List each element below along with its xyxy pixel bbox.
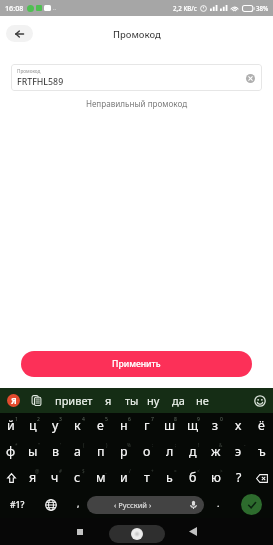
button[interactable]: #1? [3, 493, 31, 517]
staticText: ' [60, 442, 62, 448]
button[interactable]: Промокод [11, 64, 262, 91]
staticText: #1? [10, 499, 25, 511]
button[interactable]: Удалить [250, 465, 273, 491]
staticText: щ [187, 417, 199, 434]
staticText: ! [198, 442, 200, 448]
staticText: ну [147, 393, 160, 408]
button[interactable]: о [135, 439, 158, 465]
button[interactable]: привет [53, 388, 95, 413]
button[interactable]: е [89, 413, 112, 439]
button[interactable]: ф [0, 439, 22, 465]
button[interactable]: ь [158, 465, 181, 491]
staticText: ты [125, 393, 139, 408]
button[interactable]: да [170, 388, 187, 413]
button[interactable]: ё [250, 413, 273, 439]
staticText: & [219, 442, 223, 448]
staticText: н [120, 417, 128, 434]
staticText: 9 [197, 416, 200, 423]
staticText: 16:08 [5, 3, 24, 13]
button[interactable]: й [0, 413, 22, 439]
button[interactable]: и [112, 465, 135, 491]
button[interactable]: Очистить [241, 69, 259, 87]
staticText: в [52, 443, 59, 460]
button[interactable]: ну [145, 388, 162, 413]
button[interactable]: ? [227, 465, 250, 491]
button[interactable]: Готово [241, 494, 262, 515]
button[interactable]: д [181, 439, 204, 465]
staticText: й [7, 417, 15, 434]
button[interactable]: к [66, 413, 89, 439]
staticText: FRTFHL589 [17, 76, 64, 88]
button[interactable]: Недавние [60, 518, 100, 545]
button[interactable]: Shift [0, 465, 22, 491]
button[interactable]: р [112, 439, 135, 465]
button[interactable]: н [112, 413, 135, 439]
staticText: да [172, 393, 185, 408]
staticText: " [38, 442, 40, 448]
button[interactable]: ты [123, 388, 141, 413]
staticText: .. [53, 4, 57, 12]
button[interactable]: в [44, 439, 66, 465]
staticText: п [97, 443, 105, 460]
button[interactable]: х [227, 413, 250, 439]
button[interactable]: з [204, 413, 227, 439]
staticText: < [197, 468, 200, 474]
staticText: е [97, 417, 104, 434]
button[interactable]: Применить [21, 351, 252, 377]
button[interactable]: ‹ Русский › [87, 496, 204, 514]
staticText: Промокод [17, 68, 41, 74]
staticText: м [96, 469, 106, 486]
button[interactable]: ж [204, 439, 227, 465]
staticText: / [129, 468, 131, 474]
button[interactable]: б [181, 465, 204, 491]
button[interactable]: , [70, 493, 86, 517]
staticText: 4 [82, 416, 85, 423]
button[interactable]: с [66, 465, 89, 491]
staticText: привет [55, 393, 93, 408]
button[interactable]: л [158, 439, 181, 465]
button[interactable]: ш [158, 413, 181, 439]
staticText: о [143, 443, 151, 460]
staticText: ё [258, 417, 265, 434]
button[interactable]: я [103, 388, 114, 413]
staticText: л [166, 443, 174, 460]
staticText: Применить [112, 358, 161, 370]
button[interactable]: Назад [6, 25, 33, 42]
staticText: у [52, 417, 59, 434]
button[interactable]: Домой [109, 525, 165, 543]
button[interactable]: т [135, 465, 158, 491]
button[interactable]: Назад [173, 518, 213, 545]
staticText: % [127, 442, 131, 448]
button[interactable]: не [194, 388, 211, 413]
staticText: ; [175, 442, 177, 448]
button[interactable]: а [66, 439, 89, 465]
button[interactable]: п [89, 439, 112, 465]
staticText: ъ [258, 443, 266, 460]
button[interactable]: Сменить язык [39, 493, 62, 517]
button[interactable]: ч [44, 465, 66, 491]
button[interactable]: ю [204, 465, 227, 491]
button[interactable]: ы [22, 439, 44, 465]
button[interactable]: щ [181, 413, 204, 439]
button[interactable]: э [227, 439, 250, 465]
staticText: ц [29, 417, 37, 434]
staticText: @ [35, 468, 40, 474]
button[interactable]: г [135, 413, 158, 439]
button[interactable]: Яндекс [7, 394, 20, 407]
staticText: 7 [151, 416, 154, 423]
button[interactable]: у [44, 413, 66, 439]
button[interactable]: м [89, 465, 112, 491]
staticText: 3 [59, 416, 62, 423]
staticText: $ [82, 468, 85, 474]
button[interactable]: . [210, 493, 226, 517]
button[interactable]: я [22, 465, 44, 491]
staticText: б [189, 469, 197, 486]
button[interactable]: ъ [250, 439, 273, 465]
staticText: + [151, 468, 154, 474]
button[interactable]: Буфер обмена [30, 394, 43, 407]
staticText: ы [28, 443, 38, 460]
button[interactable]: ц [22, 413, 44, 439]
button[interactable]: Эмодзи [253, 394, 267, 408]
staticText: _ [105, 468, 108, 474]
staticText: = [174, 468, 177, 474]
